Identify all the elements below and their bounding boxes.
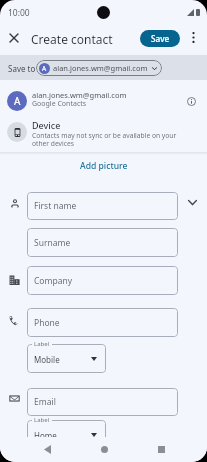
button[interactable]: Device [0,116,207,153]
button[interactable]: Recent apps [149,437,173,461]
button[interactable]: Add picture [74,156,134,176]
staticText: Label [34,416,50,424]
staticText: Phone [34,317,60,329]
staticText: Device [32,119,61,131]
staticText: Google Contacts [32,99,87,109]
button[interactable]: A [0,80,207,116]
staticText: A [42,64,47,73]
button[interactable]: Back [35,437,59,461]
button[interactable]: Expand name fields [184,192,201,213]
button[interactable]: Save [140,30,180,47]
staticText: Contacts may not sync or be available on… [32,131,177,140]
button[interactable]: Info [183,93,199,109]
button[interactable]: Phone [27,308,178,337]
staticText: 10:00 [8,7,30,19]
button[interactable]: Company [27,266,178,295]
staticText: Save [151,33,170,44]
staticText: Label [34,340,50,348]
staticText: A [14,94,21,108]
button[interactable]: More options [185,29,201,45]
staticText: Email [34,396,56,408]
button[interactable]: Home [27,420,106,438]
button[interactable]: Mobile [27,344,106,373]
staticText: Mobile [34,354,60,365]
button[interactable]: First name [27,192,178,220]
button[interactable]: Home [92,437,116,461]
button[interactable]: Surname [27,228,178,257]
staticText: other devices [32,139,74,148]
staticText: Surname [34,237,71,249]
staticText: Company [34,275,73,287]
staticText: Add picture [80,160,128,172]
staticText: First name [34,200,77,212]
staticText: alan.jones.wm@gmail.com [32,90,127,100]
staticText: Save to [8,63,36,74]
button[interactable]: A [36,60,162,76]
staticText: alan.jones.wm@gmail.com [53,63,148,73]
button[interactable]: Email [27,388,178,416]
staticText: Home [34,430,57,438]
button[interactable]: Close [5,29,23,47]
staticText: Create contact [31,31,113,47]
